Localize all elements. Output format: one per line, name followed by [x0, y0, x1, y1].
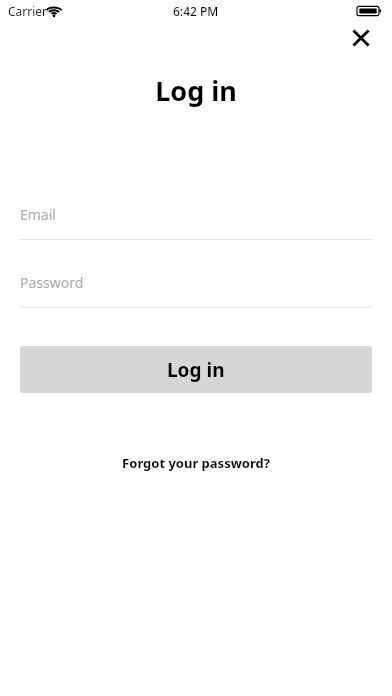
button[interactable]: Email: [20, 200, 372, 240]
button[interactable]: Password: [20, 268, 372, 308]
staticText: Email: [20, 205, 56, 224]
button[interactable]: Forgot your password?: [116, 452, 276, 474]
staticText: Password: [20, 273, 84, 292]
staticText: Log in: [167, 357, 225, 383]
staticText: 6:42 PM: [173, 3, 219, 19]
staticText: Log in: [0, 72, 392, 109]
staticText: Forgot your password?: [122, 454, 270, 472]
button[interactable]: Log in: [20, 346, 372, 393]
staticText: Carrier: [8, 3, 48, 19]
button[interactable]: Close: [341, 18, 381, 58]
